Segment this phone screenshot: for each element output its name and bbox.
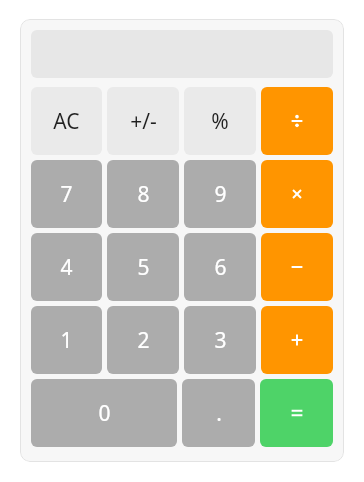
staticText: 3	[214, 326, 227, 355]
button[interactable]: 3	[184, 306, 256, 374]
button[interactable]: 1	[31, 306, 102, 374]
staticText: +/-	[130, 107, 157, 136]
button[interactable]: 9	[184, 160, 256, 228]
staticText: 5	[137, 253, 150, 282]
button[interactable]: 2	[107, 306, 179, 374]
staticText: 9	[214, 180, 227, 209]
button[interactable]: 8	[107, 160, 179, 228]
button[interactable]: 7	[31, 160, 102, 228]
staticText: 1	[60, 326, 73, 355]
button[interactable]: +/-	[107, 87, 179, 155]
button[interactable]: Divide	[261, 87, 333, 155]
staticText: 4	[60, 253, 73, 282]
button[interactable]: Multiply	[261, 160, 333, 228]
button[interactable]: .	[182, 379, 255, 447]
button[interactable]: Equals	[260, 379, 333, 447]
button[interactable]: 6	[184, 233, 256, 301]
staticText: 6	[214, 253, 227, 282]
staticText: 0	[98, 399, 111, 428]
button[interactable]: AC	[31, 87, 102, 155]
staticText: AC	[53, 107, 80, 136]
button[interactable]: %	[184, 87, 256, 155]
staticText: %	[211, 107, 229, 136]
staticText: 8	[137, 180, 150, 209]
button[interactable]: 5	[107, 233, 179, 301]
button[interactable]: Add	[261, 306, 333, 374]
staticText: 7	[60, 180, 73, 209]
staticText: .	[216, 399, 222, 428]
staticText: 2	[137, 326, 150, 355]
button[interactable]: 0	[31, 379, 177, 447]
button[interactable]: Subtract	[261, 233, 333, 301]
button[interactable]: 4	[31, 233, 102, 301]
